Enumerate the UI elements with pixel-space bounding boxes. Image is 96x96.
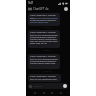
button[interactable]: Add attachment: [28, 83, 68, 89]
staticText: Message: [33, 85, 43, 88]
staticText: 9:43 AM: [44, 70, 52, 73]
button[interactable]: Sure! Computers: Transfer data or stay p…: [28, 13, 60, 26]
button[interactable]: Sure! Computers: Transfer data or stay p…: [28, 74, 61, 82]
button[interactable]: Sure! Computers: Transfer data or stay p…: [28, 54, 60, 69]
staticText: ChatGPT 4o: [33, 7, 49, 11]
button[interactable]: Send: [63, 84, 67, 88]
staticText: Sure! Computers: Transfer data or stay p…: [30, 14, 58, 24]
button[interactable]: Sure! Computers: Transfer data or stay p…: [28, 30, 60, 48]
staticText: Sure! Computers: Transfer data or stay p…: [30, 55, 58, 65]
staticText: 9:42 AM: [44, 49, 52, 52]
staticText: 9:41 AM: [44, 26, 52, 29]
button[interactable]: Add attachment: [29, 85, 32, 88]
staticText: Sure! Computers: Transfer data or stay p…: [30, 31, 58, 45]
button[interactable]: Menu: [28, 7, 32, 11]
button[interactable]: Profile: [64, 7, 68, 11]
staticText: 9:41: [28, 1, 34, 5]
staticText: Sure! Computers: Transfer data or stay p…: [30, 75, 59, 81]
